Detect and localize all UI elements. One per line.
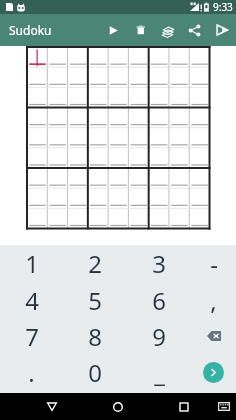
staticText: 9 xyxy=(152,320,166,353)
button[interactable]: Back xyxy=(29,393,74,420)
staticText: 9:33 xyxy=(213,0,233,14)
staticText: Sudoku xyxy=(9,22,52,38)
button[interactable]: _ xyxy=(127,354,191,390)
staticText: 1 xyxy=(25,247,39,280)
button[interactable]: Home xyxy=(95,393,140,420)
button[interactable]: Backspace xyxy=(191,318,236,354)
staticText: 8 xyxy=(88,320,102,353)
button[interactable]: 4 xyxy=(0,282,63,318)
button[interactable]: Share xyxy=(181,14,208,46)
button[interactable]: Send xyxy=(208,14,235,46)
button[interactable]: Recents xyxy=(161,393,206,420)
button[interactable]: . xyxy=(0,354,63,390)
button[interactable]: 5 xyxy=(63,282,127,318)
staticText: . xyxy=(28,356,35,389)
staticText: 6 xyxy=(152,284,166,317)
staticText: _ xyxy=(154,356,165,389)
staticText: 7 xyxy=(25,320,39,353)
staticText: 4 xyxy=(25,284,39,317)
staticText: 5 xyxy=(88,284,102,317)
staticText: 0 xyxy=(88,356,102,389)
button[interactable]: Switch keyboard xyxy=(211,393,236,420)
button[interactable]: 6 xyxy=(127,282,191,318)
button[interactable]: 3 xyxy=(127,245,191,282)
button[interactable]: Enter xyxy=(191,354,236,390)
button[interactable]: 7 xyxy=(0,318,63,354)
button[interactable]: Play xyxy=(100,14,127,46)
button[interactable]: Delete xyxy=(127,14,154,46)
staticText: - xyxy=(210,247,218,280)
staticText: 3 xyxy=(152,247,166,280)
button[interactable]: 2 xyxy=(63,245,127,282)
button[interactable]: 9 xyxy=(127,318,191,354)
button[interactable]: Cards xyxy=(154,14,181,46)
button[interactable]: , xyxy=(191,282,236,318)
button[interactable]: - xyxy=(191,245,236,282)
button[interactable]: 1 xyxy=(0,245,63,282)
button[interactable]: 8 xyxy=(63,318,127,354)
staticText: , xyxy=(210,284,217,317)
button[interactable]: 0 xyxy=(63,354,127,390)
staticText: 2 xyxy=(88,247,102,280)
